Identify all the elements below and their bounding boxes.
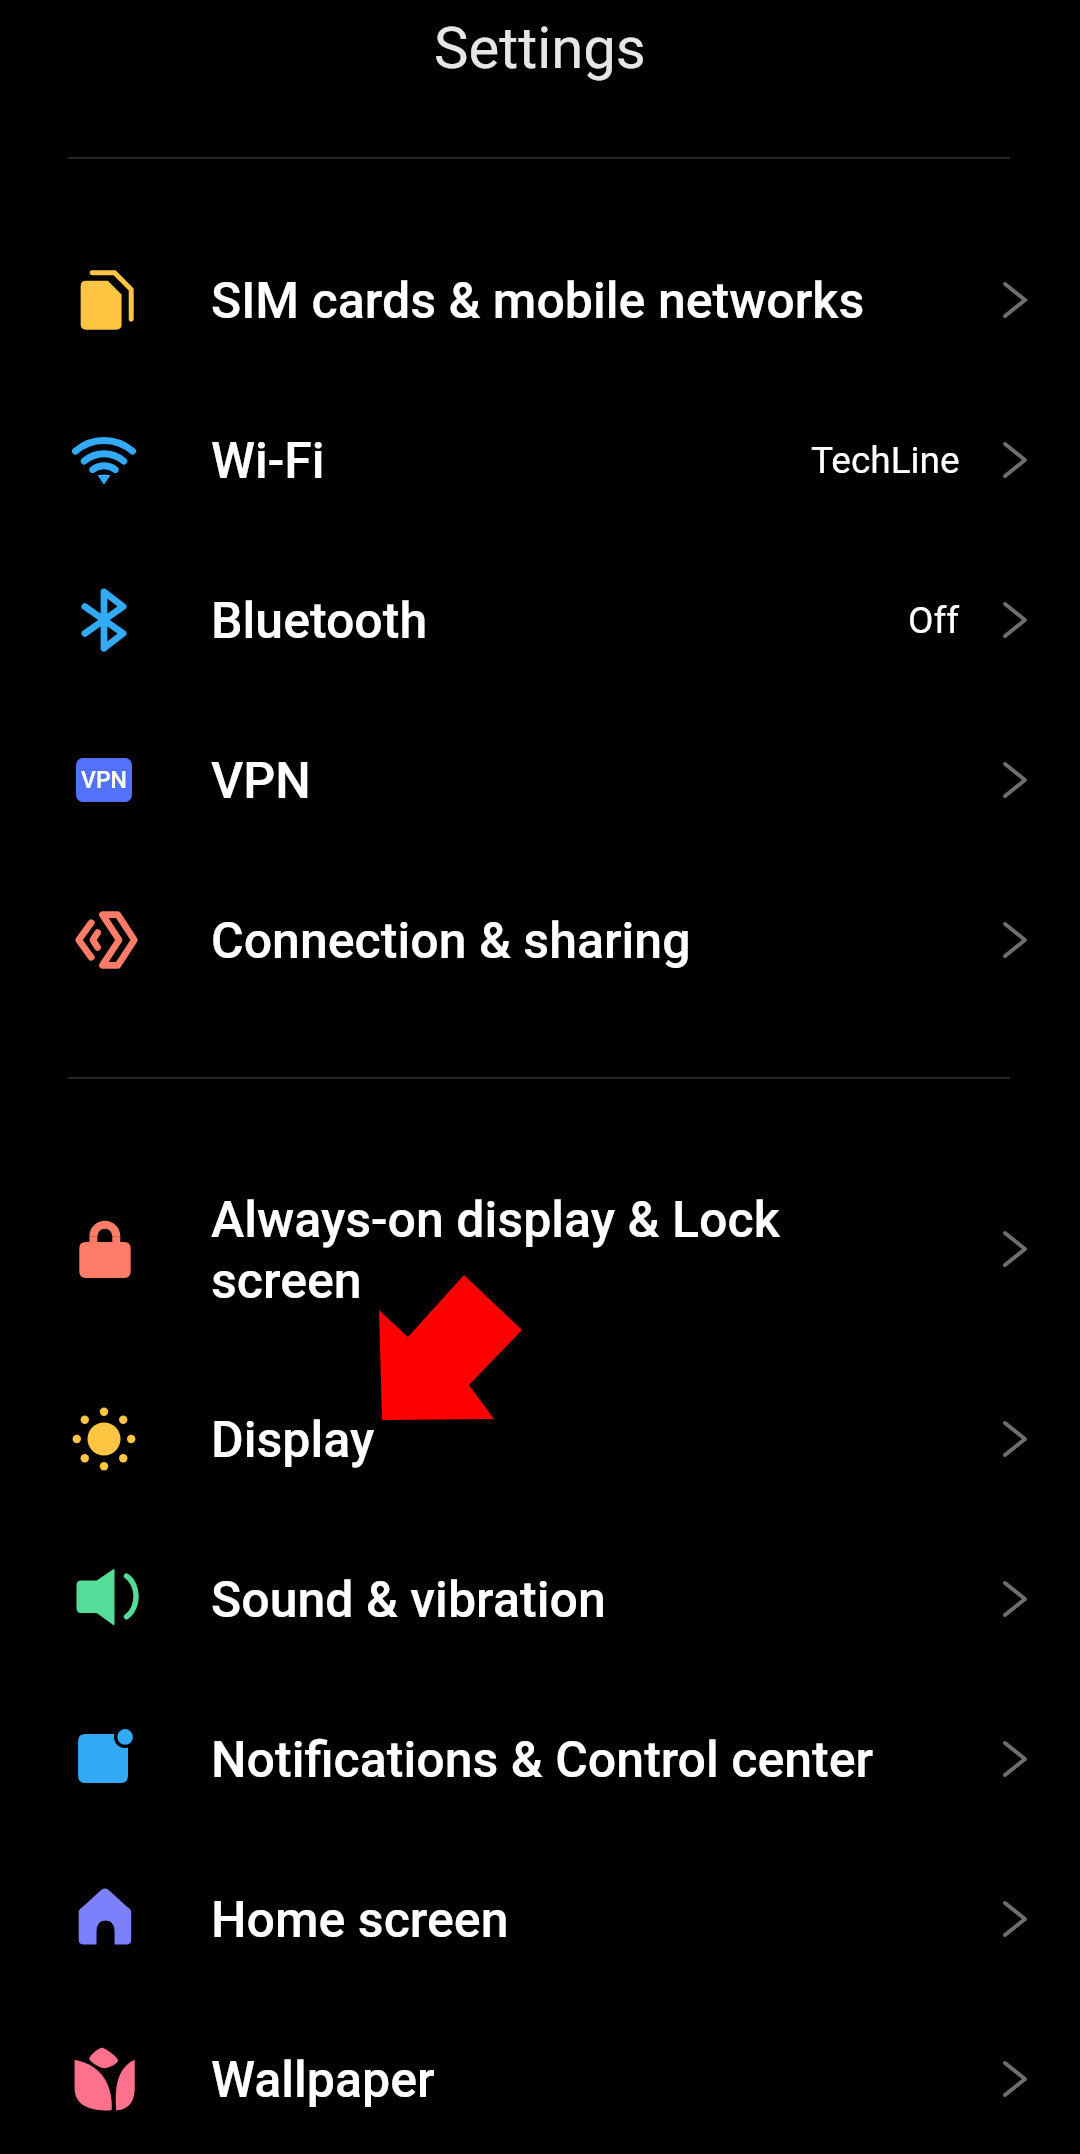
staticText: Wi-Fi [211, 432, 325, 491]
staticText: TechLine [811, 439, 960, 482]
button[interactable]: Connection & sharing [0, 860, 1080, 1020]
button[interactable]: Display [0, 1359, 1080, 1519]
button[interactable]: Wallpaper [0, 1999, 1080, 2154]
staticText: Always-on display & Lock screen [211, 1191, 791, 1310]
staticText: Home screen [211, 1891, 509, 1950]
staticText: Settings [434, 14, 646, 82]
button[interactable]: VPN [0, 700, 1080, 860]
staticText: Wallpaper [211, 2051, 435, 2110]
staticText: VPN [81, 767, 127, 794]
button[interactable]: Bluetooth [0, 540, 1080, 700]
button[interactable]: Home screen [0, 1839, 1080, 1999]
button[interactable]: Always-on display & Lock screen [0, 1169, 1080, 1329]
staticText: Bluetooth [211, 592, 428, 651]
staticText: Display [211, 1411, 375, 1470]
staticText: VPN [211, 752, 311, 811]
staticText: Off [908, 599, 960, 642]
button[interactable]: Notifications & Control center [0, 1679, 1080, 1839]
staticText: Notifications & Control center [211, 1731, 874, 1790]
staticText: Sound & vibration [211, 1571, 606, 1630]
staticText: SIM cards & mobile networks [211, 272, 865, 331]
button[interactable]: SIM cards & mobile networks [0, 220, 1080, 380]
button[interactable]: Wi-Fi [0, 380, 1080, 540]
staticText: Connection & sharing [211, 912, 691, 971]
button[interactable]: Sound & vibration [0, 1519, 1080, 1679]
